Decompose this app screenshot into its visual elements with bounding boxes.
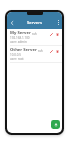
- staticText: ssh: [32, 32, 37, 36]
- button[interactable]: Other Server: [7, 46, 62, 62]
- button[interactable]: Edit: [49, 49, 54, 54]
- staticText: 192.168.1.100: [10, 36, 30, 40]
- staticText: user: admin: [10, 40, 27, 44]
- button[interactable]: Edit: [49, 32, 54, 37]
- button[interactable]: Delete: [55, 49, 60, 54]
- button[interactable]: More options: [55, 19, 62, 26]
- staticText: Other Server: [10, 47, 37, 53]
- staticText: user: root: [10, 57, 24, 61]
- staticText: 10.0.0.5: [10, 53, 21, 57]
- staticText: ssh: [38, 49, 43, 53]
- button[interactable]: My Server: [7, 29, 62, 45]
- button[interactable]: Add server: [51, 120, 60, 129]
- button[interactable]: Back: [8, 19, 15, 26]
- staticText: Servers: [27, 20, 42, 26]
- button[interactable]: Delete: [55, 32, 60, 37]
- staticText: My Server: [10, 30, 31, 36]
